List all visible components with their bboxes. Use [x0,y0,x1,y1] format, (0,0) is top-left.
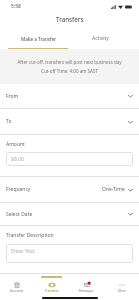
staticText: Transfers [45,289,59,293]
staticText: Cut-off Time: 4:00 am SAST [41,68,98,74]
button[interactable]: Accounts [0,274,34,295]
button[interactable]: More [104,274,139,295]
button[interactable]: From [0,84,139,109]
staticText: Make a Transfer [21,36,57,42]
staticText: Frequency [6,186,102,193]
button[interactable]: Enter Text [6,244,133,263]
button[interactable]: $0.00 [6,152,133,166]
staticText: After cut-off, transfers will post next … [17,59,122,65]
staticText: Transfer Description [6,232,54,239]
staticText: Activity [92,35,109,42]
staticText: Enter Text [11,248,35,255]
staticText: 5:58 [11,3,21,10]
staticText: From [6,93,128,100]
button[interactable]: Messages [69,274,104,295]
staticText: Transfers [56,15,84,23]
button[interactable]: Transfers [34,274,69,295]
button[interactable]: Activity [69,31,131,48]
staticText: Amount [6,141,25,148]
button[interactable]: Select Date [0,203,139,226]
staticText: One-Time [102,186,125,193]
button[interactable]: Make a Transfer [8,31,69,48]
staticText: More [118,289,126,293]
staticText: Select Date [6,211,128,218]
staticText: $0.00 [11,156,24,163]
staticText: To [6,118,128,125]
staticText: Messages [79,289,94,293]
button[interactable]: Frequency [0,176,139,203]
button[interactable]: To [0,109,139,135]
staticText: Accounts [10,289,24,293]
